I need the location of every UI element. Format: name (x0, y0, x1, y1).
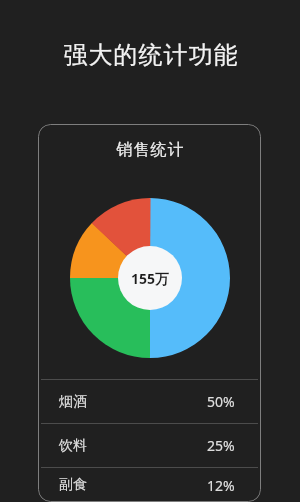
staticText: 155万 (131, 269, 170, 288)
staticText: 12% (207, 476, 235, 495)
staticText: 烟酒 (59, 393, 87, 411)
button[interactable]: 销售统计 (38, 124, 261, 502)
staticText: 强大的统计功能 (63, 40, 238, 70)
button[interactable]: 副食 (38, 468, 261, 502)
other: 销售统计饼图 155万 (70, 198, 230, 358)
staticText: 25% (207, 436, 235, 455)
staticText: 50% (207, 392, 235, 411)
staticText: 销售统计 (116, 140, 184, 160)
button[interactable]: 烟酒 (38, 380, 261, 423)
staticText: 饮料 (59, 437, 87, 455)
staticText: 副食 (59, 476, 87, 494)
button[interactable]: 饮料 (38, 424, 261, 467)
